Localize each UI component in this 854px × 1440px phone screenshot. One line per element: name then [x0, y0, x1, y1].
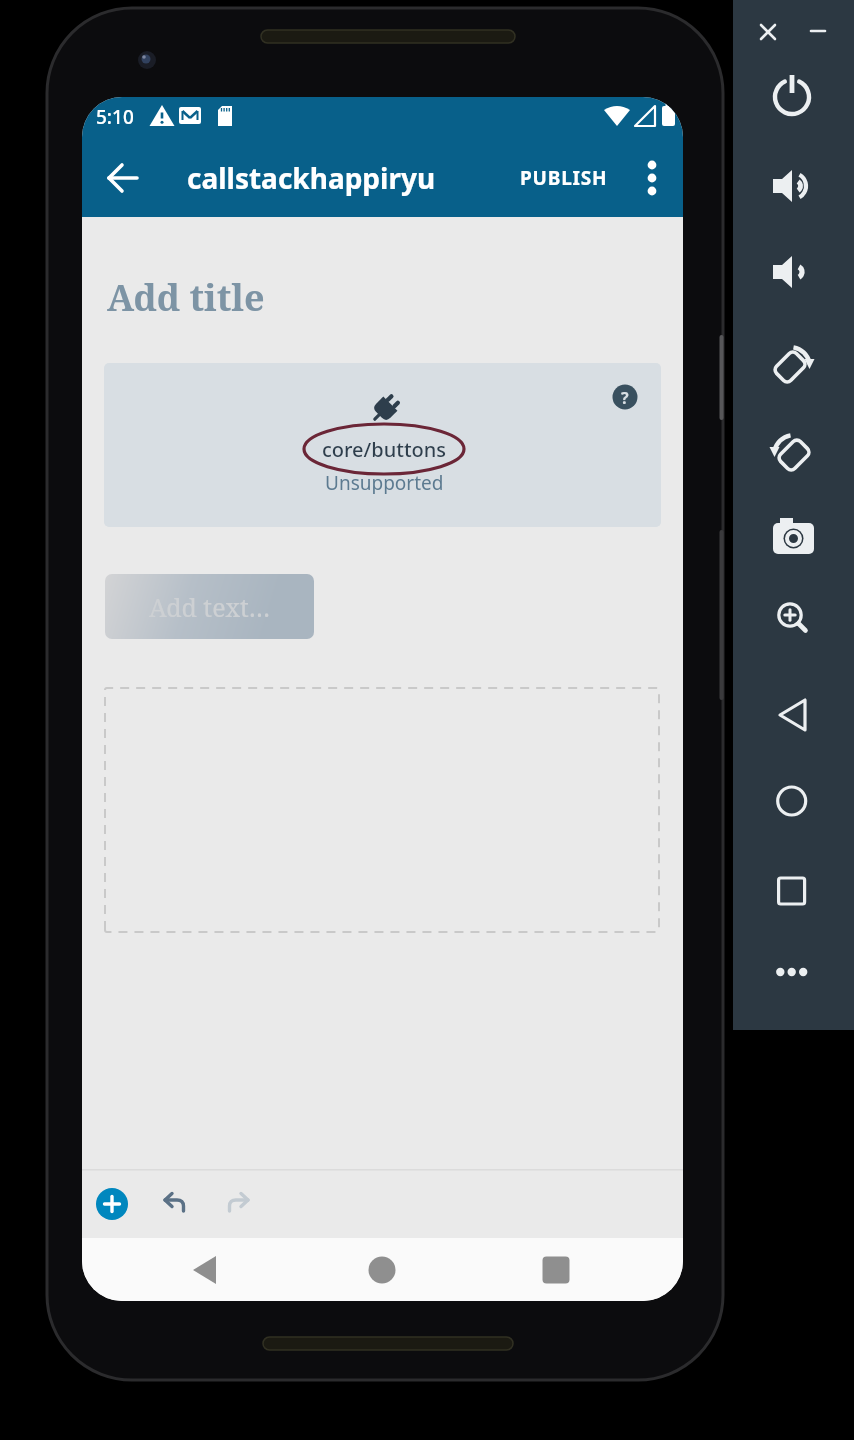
button[interactable]	[767, 864, 817, 914]
button[interactable]: Add text…	[105, 574, 314, 639]
button[interactable]	[183, 1245, 233, 1295]
button[interactable]	[803, 17, 833, 47]
staticText: PUBLISH	[520, 165, 608, 191]
button[interactable]: ?	[104, 363, 661, 527]
button[interactable]	[767, 423, 817, 473]
staticText: 5:10	[96, 104, 134, 130]
staticText: Add title	[107, 273, 265, 322]
staticText: ?	[621, 387, 629, 409]
button[interactable]	[767, 72, 817, 122]
button[interactable]	[632, 157, 674, 199]
button[interactable]	[96, 1188, 128, 1220]
button[interactable]	[99, 154, 147, 202]
button[interactable]	[753, 17, 783, 47]
button[interactable]	[767, 597, 817, 647]
button[interactable]	[531, 1245, 581, 1295]
button[interactable]: PUBLISH	[507, 157, 621, 199]
button[interactable]	[767, 160, 817, 210]
button[interactable]	[357, 1245, 407, 1295]
button[interactable]	[154, 1184, 194, 1224]
button[interactable]	[767, 952, 817, 1002]
staticText: core/buttons	[322, 436, 447, 463]
staticText: Add text…	[149, 590, 271, 624]
staticText: callstackhappiryu	[187, 159, 436, 197]
staticText: Unsupported	[325, 470, 444, 494]
button[interactable]	[219, 1184, 259, 1224]
button[interactable]	[767, 511, 817, 561]
button[interactable]	[767, 688, 817, 738]
button[interactable]	[767, 335, 817, 385]
button[interactable]	[767, 775, 817, 825]
button[interactable]	[767, 247, 817, 297]
